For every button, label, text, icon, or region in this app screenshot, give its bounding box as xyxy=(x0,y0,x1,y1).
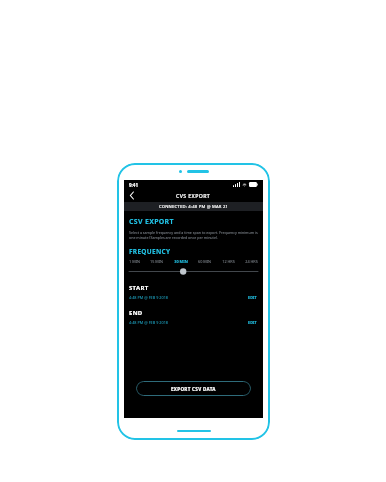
staticText: EXPORT CSV DATA xyxy=(171,386,216,392)
staticText: FREQUENCY xyxy=(129,247,171,256)
staticText: 4:48 PM @ FEB 9 2018 xyxy=(129,320,169,325)
staticText: CONNECTED: 4:48 PM @ MAR 21 xyxy=(159,204,229,210)
button[interactable]: 1 MIN xyxy=(129,259,140,264)
staticText: Select a sample frequency and a time spa… xyxy=(129,230,258,240)
button[interactable]: EDIT xyxy=(247,319,258,326)
button[interactable]: Back xyxy=(126,190,137,201)
staticText: 4:48 PM @ FEB 9 2018 xyxy=(129,295,169,300)
button[interactable]: 12 HRS xyxy=(222,259,235,264)
button[interactable]: EDIT xyxy=(247,294,258,301)
staticText: START xyxy=(129,284,149,292)
button[interactable]: EXPORT CSV DATA xyxy=(136,381,251,396)
button[interactable]: Frequency slider xyxy=(129,267,258,276)
button[interactable]: 15 MIN xyxy=(150,259,163,264)
staticText: EDIT xyxy=(248,295,257,300)
staticText: END xyxy=(129,309,143,317)
staticText: CVS EXPORT xyxy=(176,192,211,199)
staticText: CSV EXPORT xyxy=(129,217,174,227)
staticText: 9:41 xyxy=(129,182,138,188)
button[interactable]: 30 MIN xyxy=(174,259,188,264)
button[interactable]: 24 HRS xyxy=(245,259,258,264)
staticText: EDIT xyxy=(248,320,257,325)
button[interactable]: 60 MIN xyxy=(198,259,211,264)
